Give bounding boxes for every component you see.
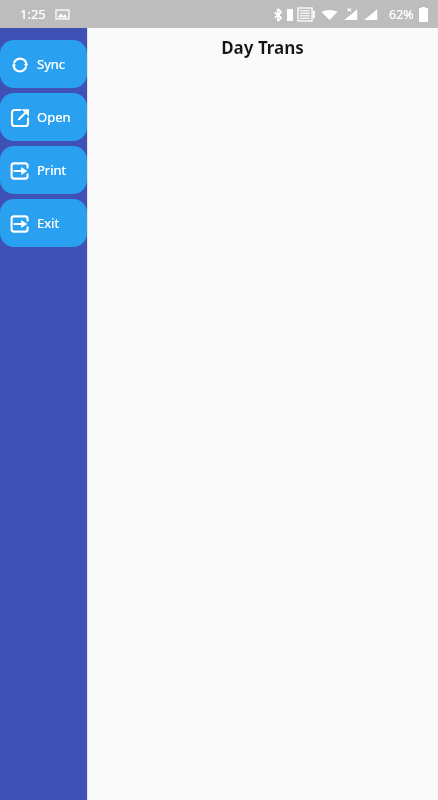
other: Action xyxy=(10,214,30,234)
staticText: Day Trans xyxy=(221,36,304,59)
staticText: Exit xyxy=(37,214,60,232)
staticText: 62% xyxy=(389,6,414,23)
staticText: Sync xyxy=(37,55,66,73)
button[interactable]: Action xyxy=(0,199,87,247)
button[interactable]: Open xyxy=(0,93,87,141)
staticText: Print xyxy=(37,161,67,179)
other: Action xyxy=(10,161,30,181)
button[interactable]: Sync xyxy=(0,40,87,88)
other: Open xyxy=(10,108,30,128)
staticText: 1:25 xyxy=(20,5,46,23)
other: Sync xyxy=(10,55,30,75)
button[interactable]: Action xyxy=(0,146,87,194)
staticText: Open xyxy=(37,108,71,126)
